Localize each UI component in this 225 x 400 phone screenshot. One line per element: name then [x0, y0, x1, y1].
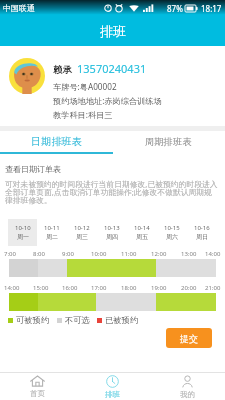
staticText: 排班 — [100, 23, 126, 39]
staticText: 13570240431 — [77, 61, 147, 76]
button[interactable]: 10-12 — [67, 219, 97, 246]
staticText: 可被预约 — [16, 315, 50, 325]
staticText: 19:00 — [151, 284, 167, 292]
staticText: 10-14 — [134, 224, 150, 232]
staticText: 9:00 — [62, 250, 74, 258]
staticText: 赖承 — [53, 64, 72, 76]
staticText: 我的 — [180, 390, 195, 399]
staticText: 8:00 — [33, 250, 45, 258]
staticText: 中国联通 — [3, 3, 35, 13]
button[interactable]: 10-14 — [127, 219, 157, 246]
staticText: 可对未被预约的时间段进行当前日期修改,已被预约的时段进入全部订单页面,点击取消订… — [5, 179, 219, 205]
staticText: 16:00 — [62, 284, 78, 292]
button[interactable]: 提交 — [166, 328, 212, 348]
staticText: 20:00 — [181, 284, 197, 292]
button[interactable]: 10-16 — [187, 219, 217, 246]
button[interactable]: 10-10 — [8, 219, 37, 246]
staticText: 周四 — [106, 233, 118, 241]
staticText: 14:00 — [205, 250, 221, 258]
staticText: 查看日期订单表 — [5, 164, 61, 174]
staticText: 21:00 — [205, 284, 221, 292]
staticText: 12:00 — [151, 250, 167, 258]
staticText: 11:00 — [121, 250, 137, 258]
staticText: 周日 — [196, 233, 208, 241]
staticText: 10-13 — [104, 224, 120, 232]
other: 我的 — [181, 375, 194, 388]
button[interactable]: 我的 — [150, 373, 225, 400]
staticText: 7:00 — [4, 250, 16, 258]
staticText: 17:00 — [91, 284, 107, 292]
staticText: 18:00 — [121, 284, 137, 292]
button[interactable]: 日期排班表 — [0, 131, 112, 152]
staticText: 排班 — [105, 390, 120, 399]
staticText: 提交 — [180, 333, 198, 344]
staticText: 周二 — [46, 233, 58, 241]
staticText: 10-11 — [44, 224, 60, 232]
button[interactable]: 10-11 — [37, 219, 67, 246]
staticText: 87% — [167, 3, 183, 14]
staticText: 10-12 — [74, 224, 90, 232]
staticText: 周三 — [76, 233, 88, 241]
staticText: 14:00 — [4, 284, 20, 292]
button[interactable]: 首页 — [0, 373, 75, 400]
staticText: 10-10 — [15, 224, 31, 232]
button[interactable]: 排班 — [75, 373, 150, 400]
staticText: 车牌号:粤A00002 — [53, 81, 117, 92]
staticText: 10-15 — [164, 224, 180, 232]
other: 排班 — [106, 375, 119, 388]
button[interactable]: 周期排班表 — [112, 131, 225, 152]
staticText: 日期排班表 — [31, 135, 82, 148]
staticText: 周六 — [166, 233, 178, 241]
staticText: 不可选 — [65, 315, 90, 325]
staticText: 教学科目:科目三 — [53, 109, 113, 120]
button[interactable]: 10-15 — [157, 219, 187, 246]
other: 首页 — [30, 375, 45, 387]
staticText: 10-16 — [194, 224, 210, 232]
staticText: 周一 — [17, 233, 29, 241]
staticText: 周期排班表 — [145, 136, 192, 148]
staticText: 已被预约 — [105, 315, 139, 325]
button[interactable]: 10-13 — [97, 219, 127, 246]
staticText: 首页 — [30, 389, 45, 398]
staticText: 13:00 — [181, 250, 197, 258]
staticText: 10:00 — [91, 250, 107, 258]
staticText: 15:00 — [33, 284, 49, 292]
staticText: 18:17 — [201, 3, 222, 14]
staticText: 周五 — [136, 233, 148, 241]
staticText: 预约场地地址:赤岗综合训练场 — [53, 95, 162, 106]
